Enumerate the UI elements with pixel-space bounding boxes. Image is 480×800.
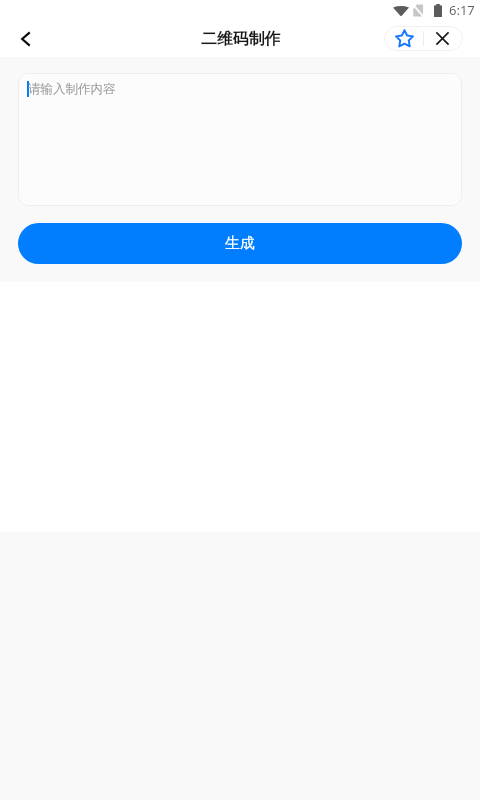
staticText: 二维码制作 <box>201 29 280 49</box>
button[interactable]: 请输入制作内容 <box>18 73 462 206</box>
staticText: 请输入制作内容 <box>28 81 116 97</box>
button[interactable]: Close <box>424 26 463 51</box>
button[interactable]: 生成 <box>18 223 462 264</box>
button[interactable]: Favourite <box>384 26 423 51</box>
staticText: 生成 <box>225 234 255 253</box>
staticText: 6:17 <box>449 1 475 19</box>
button[interactable]: Back <box>0 20 48 57</box>
